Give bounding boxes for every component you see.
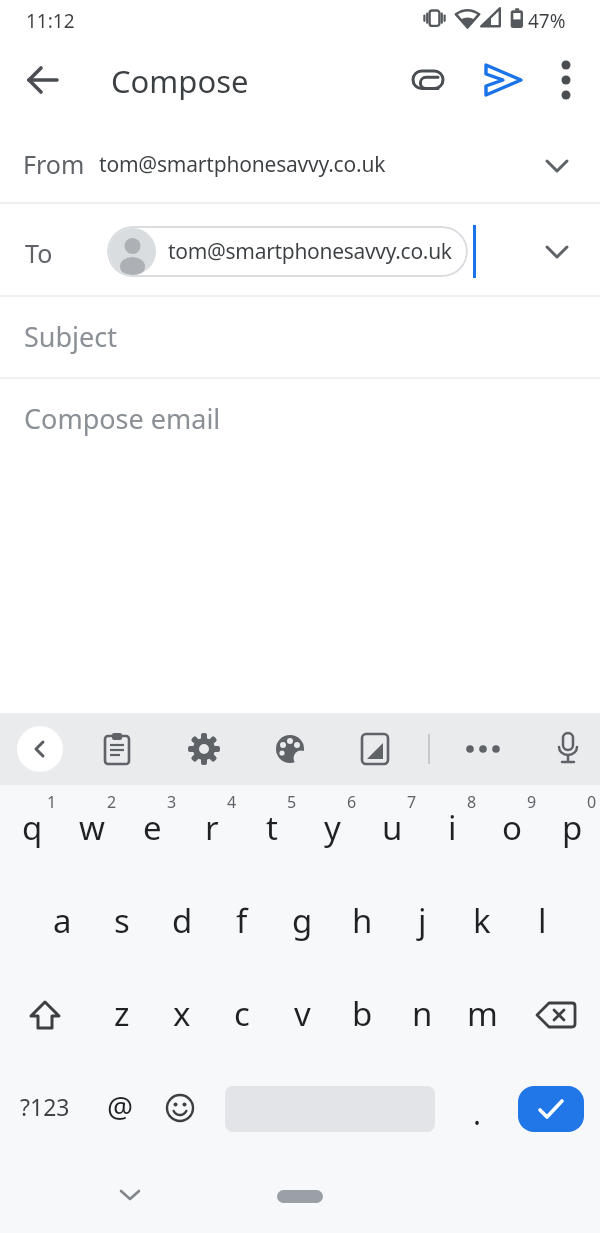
staticText: z: [114, 991, 130, 1036]
button[interactable]: [548, 60, 584, 100]
button[interactable]: n: [390, 971, 450, 1064]
button[interactable]: f: [210, 878, 270, 971]
staticText: j: [418, 898, 427, 943]
staticText: f: [236, 898, 248, 943]
button[interactable]: [510, 971, 600, 1064]
staticText: Subject: [24, 318, 118, 355]
button[interactable]: q: [0, 785, 60, 878]
button[interactable]: b: [330, 971, 390, 1064]
staticText: @: [107, 1087, 134, 1126]
button[interactable]: [545, 159, 569, 173]
staticText: x: [173, 991, 191, 1036]
button[interactable]: [188, 733, 220, 765]
staticText: n: [412, 991, 433, 1036]
staticText: 47%: [528, 8, 566, 34]
staticText: From: [23, 147, 85, 181]
button[interactable]: m: [450, 971, 510, 1064]
button[interactable]: u: [360, 785, 420, 878]
staticText: m: [467, 991, 498, 1036]
staticText: 5: [287, 791, 297, 813]
staticText: To: [25, 236, 53, 270]
staticText: tom@smartphonesavvy.co.uk: [168, 237, 452, 266]
staticText: .: [473, 1093, 482, 1134]
button[interactable]: a: [30, 878, 90, 971]
button[interactable]: [481, 60, 521, 100]
staticText: 4: [227, 791, 237, 813]
staticText: ?123: [20, 1091, 70, 1122]
button[interactable]: [102, 733, 132, 765]
button[interactable]: i: [420, 785, 480, 878]
button[interactable]: [150, 1064, 210, 1157]
button[interactable]: [274, 733, 306, 765]
button[interactable]: r: [180, 785, 240, 878]
staticText: l: [538, 898, 547, 943]
staticText: 11:12: [26, 8, 75, 34]
button[interactable]: y: [300, 785, 360, 878]
staticText: t: [266, 805, 278, 850]
staticText: s: [114, 898, 130, 943]
button[interactable]: c: [210, 971, 270, 1064]
button[interactable]: z: [90, 971, 150, 1064]
staticText: k: [473, 898, 491, 943]
button[interactable]: Subject: [0, 296, 600, 377]
button[interactable]: [359, 733, 391, 765]
staticText: a: [53, 898, 72, 943]
staticText: v: [294, 991, 311, 1036]
staticText: 0: [587, 791, 597, 813]
button[interactable]: Compose email: [0, 379, 600, 709]
button[interactable]: tom@smartphonesavvy.co.uk: [107, 226, 468, 277]
button[interactable]: h: [330, 878, 390, 971]
button[interactable]: x: [150, 971, 210, 1064]
staticText: h: [352, 898, 373, 943]
button[interactable]: @: [90, 1064, 150, 1157]
button[interactable]: j: [390, 878, 450, 971]
staticText: g: [292, 898, 313, 943]
button[interactable]: ?123: [0, 1064, 90, 1157]
button[interactable]: k: [450, 878, 510, 971]
button[interactable]: t: [240, 785, 300, 878]
button[interactable]: [210, 1064, 450, 1157]
staticText: y: [324, 805, 341, 850]
button[interactable]: [465, 733, 501, 765]
staticText: 9: [527, 791, 537, 813]
button[interactable]: s: [90, 878, 150, 971]
staticText: tom@smartphonesavvy.co.uk: [99, 150, 386, 179]
button[interactable]: .: [450, 1064, 510, 1157]
button[interactable]: w: [60, 785, 120, 878]
staticText: 2: [107, 791, 117, 813]
staticText: Compose email: [24, 400, 221, 437]
staticText: 8: [467, 791, 477, 813]
button[interactable]: [277, 1190, 323, 1203]
button[interactable]: From: [0, 122, 600, 203]
staticText: d: [172, 898, 193, 943]
button[interactable]: [24, 61, 62, 99]
staticText: c: [234, 991, 250, 1036]
staticText: u: [382, 805, 403, 850]
button[interactable]: [552, 731, 584, 769]
button[interactable]: o: [480, 785, 540, 878]
staticText: 7: [407, 791, 417, 813]
button[interactable]: [119, 1189, 141, 1201]
staticText: 3: [167, 791, 177, 813]
staticText: i: [448, 805, 457, 850]
button[interactable]: d: [150, 878, 210, 971]
button[interactable]: e: [120, 785, 180, 878]
button[interactable]: v: [270, 971, 330, 1064]
button[interactable]: l: [510, 878, 570, 971]
staticText: 1: [47, 791, 57, 813]
staticText: q: [22, 805, 43, 850]
staticText: o: [502, 805, 522, 850]
staticText: r: [205, 805, 219, 850]
button[interactable]: [0, 971, 90, 1064]
staticText: b: [352, 991, 373, 1036]
staticText: 6: [347, 791, 357, 813]
button[interactable]: [408, 60, 448, 100]
button[interactable]: [545, 245, 569, 259]
staticText: p: [562, 805, 583, 850]
button[interactable]: p: [540, 785, 600, 878]
button[interactable]: [510, 1064, 600, 1157]
staticText: w: [79, 805, 105, 850]
button[interactable]: [17, 726, 63, 772]
button[interactable]: g: [270, 878, 330, 971]
staticText: Compose: [111, 60, 249, 102]
